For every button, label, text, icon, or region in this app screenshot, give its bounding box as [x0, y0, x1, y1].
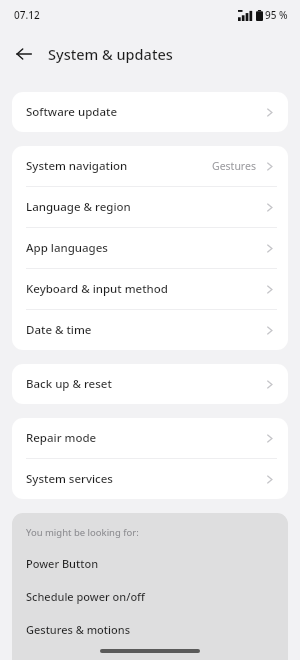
staticText: System & updates: [48, 44, 173, 64]
staticText: Gestures: [212, 159, 256, 173]
staticText: Repair mode: [26, 430, 97, 446]
button[interactable]: Date & time: [12, 310, 288, 350]
staticText: Language & region: [26, 199, 131, 215]
button[interactable]: Power Button: [12, 547, 288, 580]
button[interactable]: Keyboard & input method: [12, 269, 288, 309]
staticText: Schedule power on/off: [26, 589, 145, 604]
staticText: 95 %: [265, 8, 288, 22]
staticText: System services: [26, 471, 113, 487]
button[interactable]: Gestures & motions: [12, 613, 288, 646]
button[interactable]: Back up & reset: [12, 364, 288, 404]
button[interactable]: App languages: [12, 228, 288, 268]
button[interactable]: System navigation: [12, 146, 288, 186]
button[interactable]: Language & region: [12, 187, 288, 227]
staticText: Power Button: [26, 556, 99, 571]
staticText: Gestures & motions: [26, 622, 130, 637]
staticText: System navigation: [26, 158, 128, 174]
button[interactable]: System services: [12, 459, 288, 499]
button[interactable]: Schedule power on/off: [12, 580, 288, 613]
button[interactable]: Back: [9, 39, 39, 69]
staticText: Keyboard & input method: [26, 281, 168, 297]
staticText: 07.12: [14, 8, 40, 22]
button[interactable]: Repair mode: [12, 418, 288, 458]
staticText: You might be looking for:: [26, 526, 139, 539]
staticText: Software update: [26, 104, 117, 120]
staticText: Back up & reset: [26, 376, 112, 392]
button[interactable]: Software update: [12, 92, 288, 132]
staticText: Date & time: [26, 322, 92, 338]
staticText: App languages: [26, 240, 108, 256]
